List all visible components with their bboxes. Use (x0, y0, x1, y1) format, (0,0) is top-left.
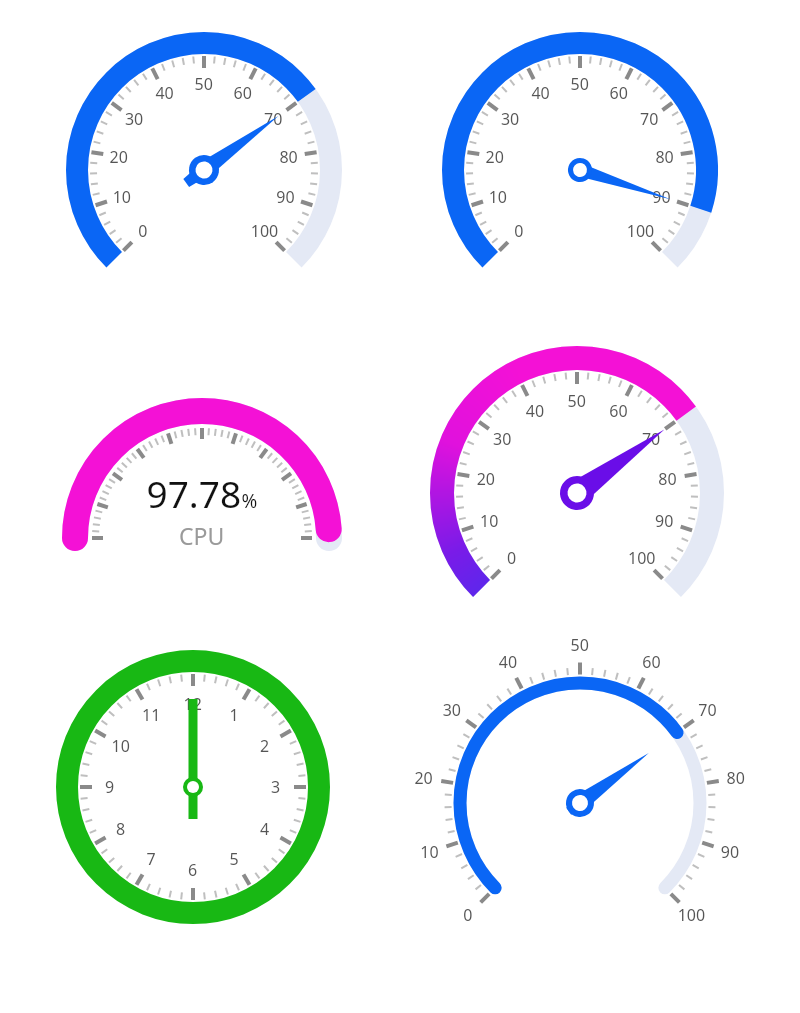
button[interactable]: Gauge gallery (0, 0, 800, 1013)
